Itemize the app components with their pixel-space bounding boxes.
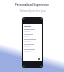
staticText: Tailored just for you [19,9,46,13]
button[interactable]: Bottom navigation [23,61,42,67]
button[interactable]: App bar [23,18,42,24]
staticText: Personalized Experience [15,3,49,7]
